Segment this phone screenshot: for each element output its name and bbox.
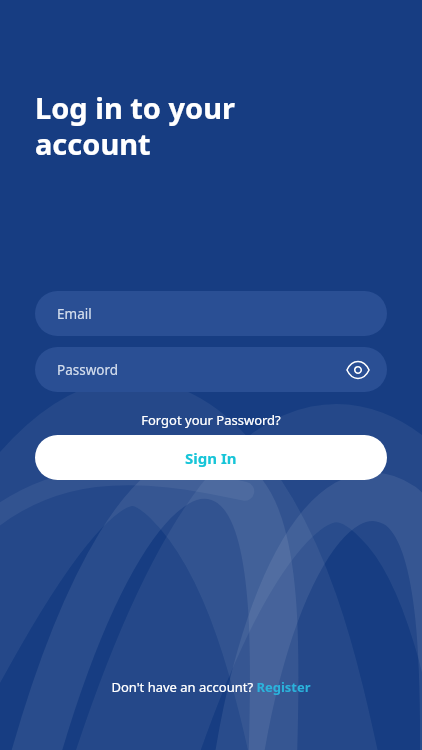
button[interactable]: Don't have an account? Register <box>0 670 422 750</box>
staticText: Don't have an account? Register <box>111 678 311 696</box>
button[interactable]: Sign In <box>35 435 387 480</box>
button[interactable]: Email <box>35 291 387 336</box>
staticText: Log in to your account <box>35 88 236 164</box>
staticText: Forgot your Password? <box>141 411 281 429</box>
staticText: Sign In <box>185 448 237 468</box>
button[interactable]: Forgot your Password? <box>0 409 422 431</box>
staticText: Email <box>57 305 92 323</box>
button[interactable]: Show password <box>341 353 375 387</box>
button[interactable]: Password <box>35 347 387 392</box>
staticText: Password <box>57 361 119 379</box>
